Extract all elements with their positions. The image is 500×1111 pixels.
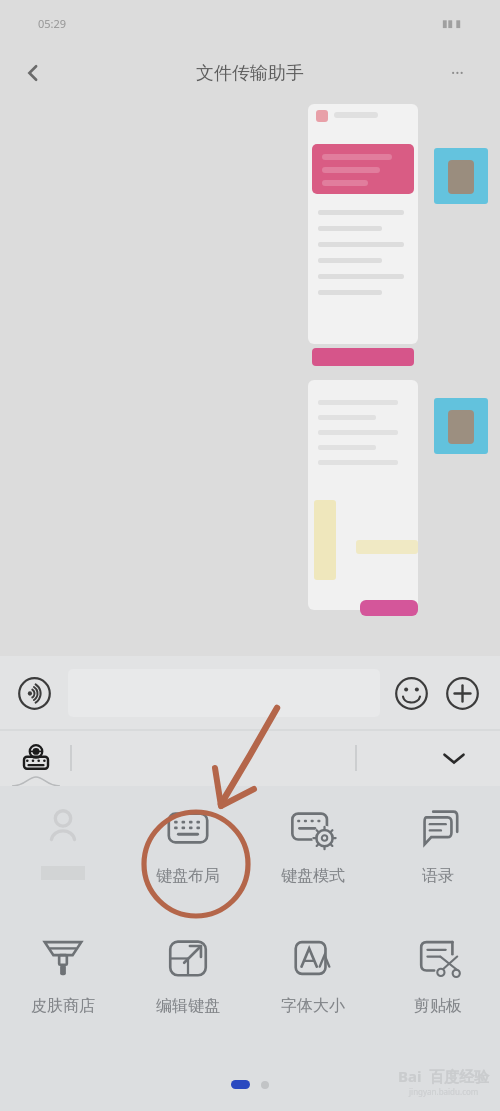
staticText: jingyan.baidu.com — [409, 1086, 479, 1097]
staticText: 编辑键盘 — [156, 996, 220, 1016]
button[interactable]: 皮肤商店 — [0, 934, 125, 1034]
button[interactable]: Emoji — [391, 673, 431, 713]
staticText: 字体大小 — [281, 996, 345, 1016]
staticText: 键盘模式 — [281, 866, 345, 886]
staticText: 语录 — [422, 866, 454, 886]
button[interactable] — [0, 804, 125, 904]
button[interactable]: Collapse keyboard — [430, 734, 478, 782]
staticText: 文件传输助手 — [196, 62, 304, 85]
button[interactable]: Voice input — [14, 673, 54, 713]
button[interactable]: Back — [20, 60, 46, 86]
staticText: ▮▮ ▮ — [442, 16, 462, 30]
button[interactable]: Input method settings — [12, 734, 60, 782]
button[interactable]: 键盘模式 — [250, 804, 375, 904]
button[interactable] — [68, 669, 380, 717]
button[interactable]: 语录 — [375, 804, 500, 904]
staticText: 剪贴板 — [414, 996, 462, 1016]
staticText: 皮肤商店 — [31, 996, 95, 1016]
button[interactable]: 字体大小 — [250, 934, 375, 1034]
staticText: Bai 百度经验 — [398, 1066, 490, 1086]
button[interactable]: 键盘布局 — [125, 804, 250, 904]
button[interactable]: ··· — [451, 62, 464, 84]
button[interactable]: 剪贴板 — [375, 934, 500, 1034]
staticText: 键盘布局 — [156, 866, 220, 886]
staticText: 05:29 — [38, 16, 67, 31]
button[interactable]: More — [442, 673, 482, 713]
button[interactable]: 编辑键盘 — [125, 934, 250, 1034]
